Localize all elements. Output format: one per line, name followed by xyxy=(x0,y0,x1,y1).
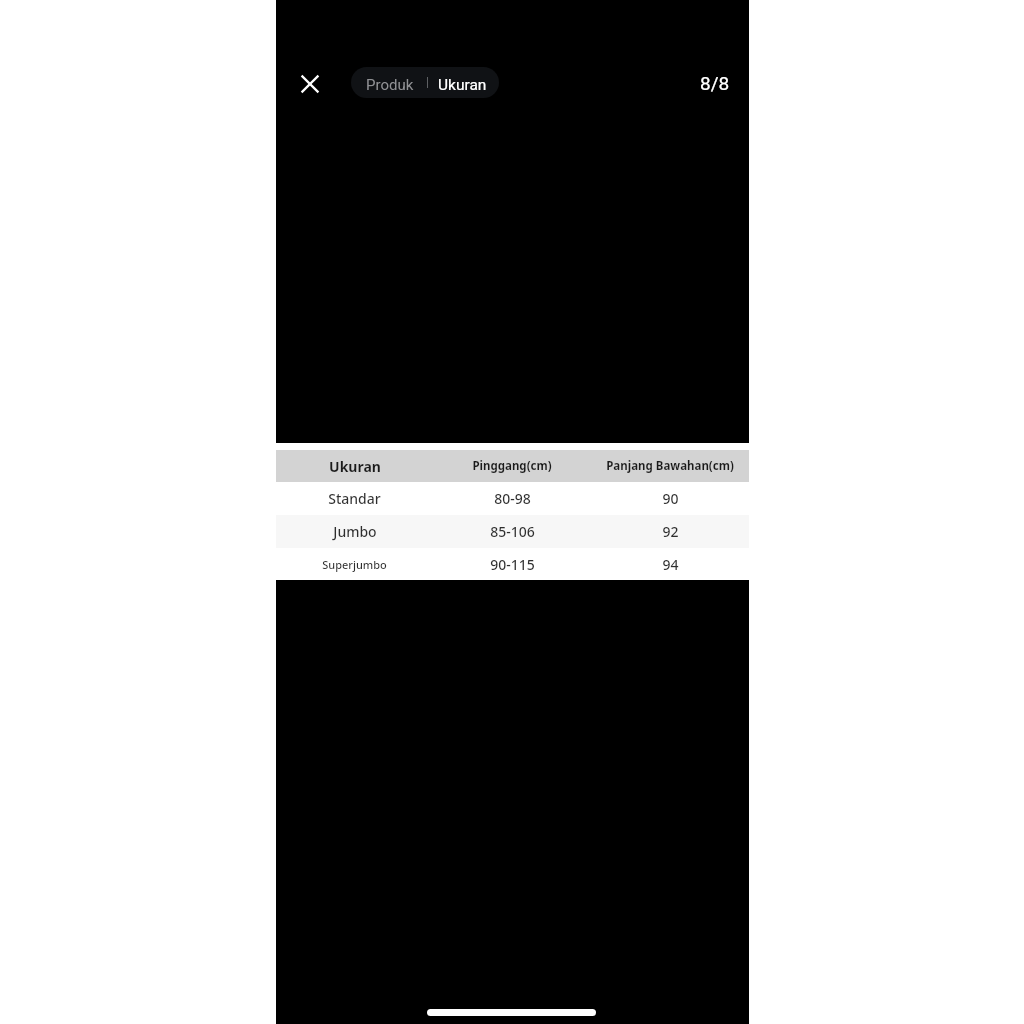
staticText: 92 xyxy=(662,522,679,541)
staticText: Jumbo xyxy=(333,522,377,541)
staticText: 80-98 xyxy=(494,489,531,508)
button[interactable]: Produk xyxy=(351,67,427,98)
staticText: Standar xyxy=(328,489,381,508)
staticText: 8/8 xyxy=(700,72,730,94)
staticText: 94 xyxy=(662,555,679,574)
staticText: Pinggang(cm) xyxy=(472,458,552,474)
button[interactable]: Close xyxy=(292,66,328,102)
staticText: 85-106 xyxy=(490,522,535,541)
button[interactable]: Ukuran xyxy=(428,67,499,98)
staticText: 90-115 xyxy=(490,555,535,574)
staticText: Panjang Bawahan(cm) xyxy=(606,458,734,474)
staticText: Ukuran xyxy=(329,457,381,476)
staticText: Superjumbo xyxy=(322,557,387,572)
staticText: 90 xyxy=(662,489,679,508)
staticText: Ukuran xyxy=(438,76,487,94)
staticText: Produk xyxy=(366,76,414,94)
